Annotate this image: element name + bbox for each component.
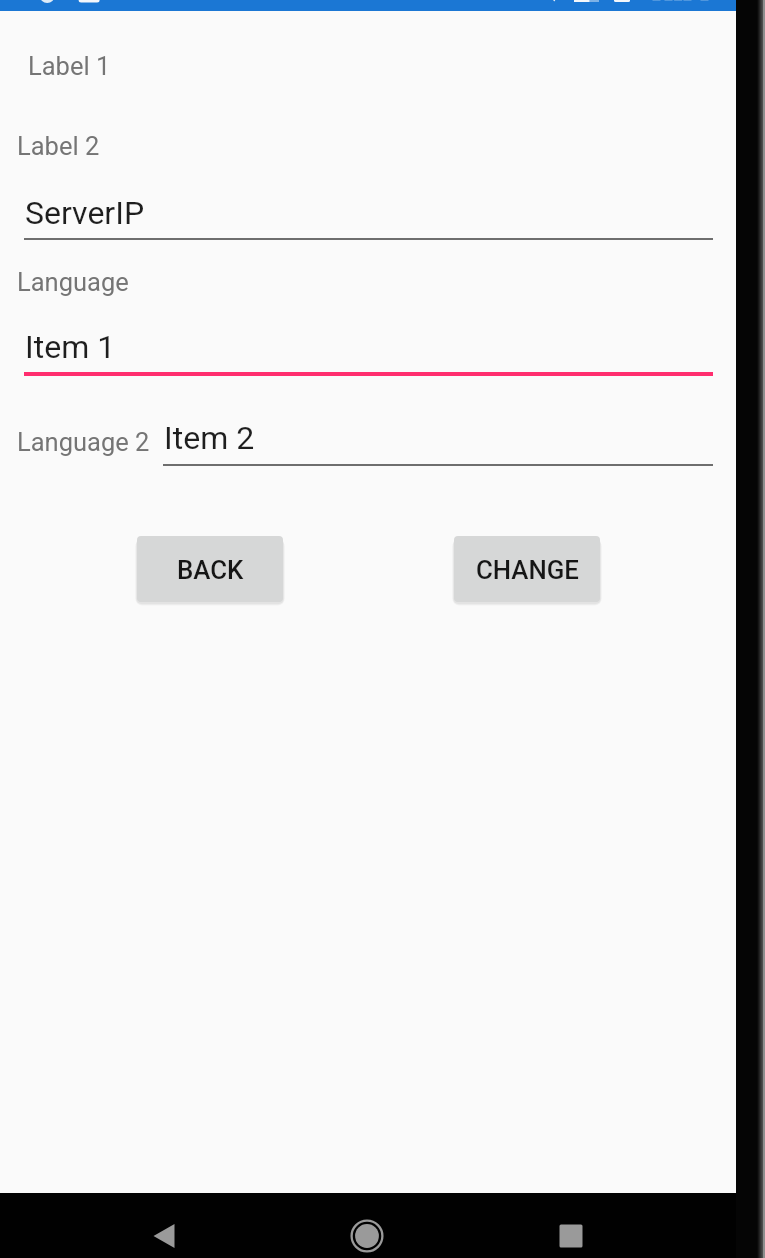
button[interactable]: Home xyxy=(345,1214,389,1258)
staticText: BACK xyxy=(177,555,244,585)
button[interactable]: Item 2 xyxy=(163,412,713,466)
button[interactable]: Item 1 xyxy=(24,321,713,376)
staticText: Item 2 xyxy=(164,419,255,457)
staticText: Label 2 xyxy=(17,131,100,161)
button[interactable]: Recent apps xyxy=(549,1214,593,1258)
staticText: Language 2 xyxy=(17,427,150,457)
staticText: Label 1 xyxy=(28,51,111,81)
staticText: ServerIP xyxy=(25,194,145,232)
button[interactable]: BACK xyxy=(137,536,283,602)
button[interactable]: Back xyxy=(142,1214,186,1258)
staticText: Item 1 xyxy=(25,328,116,366)
button[interactable]: ServerIP xyxy=(24,186,713,240)
staticText: Language xyxy=(17,267,129,297)
button[interactable]: CHANGE xyxy=(454,536,600,602)
staticText: CHANGE xyxy=(476,555,579,585)
